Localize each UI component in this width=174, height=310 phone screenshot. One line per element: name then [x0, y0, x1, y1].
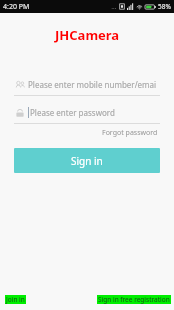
staticText: Sign in	[71, 154, 103, 168]
staticText: Forgot password	[102, 128, 158, 138]
button[interactable]: Sign in	[14, 148, 160, 173]
button[interactable]: Join in	[5, 295, 26, 304]
button[interactable]: Please enter password	[14, 101, 160, 124]
staticText: JHCamera	[55, 26, 120, 44]
button[interactable]: Please enter mobile number/emai	[14, 73, 160, 96]
staticText: 4:20 PM	[3, 2, 30, 12]
button[interactable]: Forgot password	[100, 127, 160, 139]
staticText: Please enter mobile number/emai	[28, 79, 157, 90]
staticText: 58%	[158, 2, 171, 11]
staticText: Sign in free registration	[98, 295, 170, 304]
staticText: Join in	[6, 295, 25, 304]
staticText: Please enter password	[30, 107, 115, 118]
button[interactable]: Sign in free registration	[97, 295, 171, 304]
